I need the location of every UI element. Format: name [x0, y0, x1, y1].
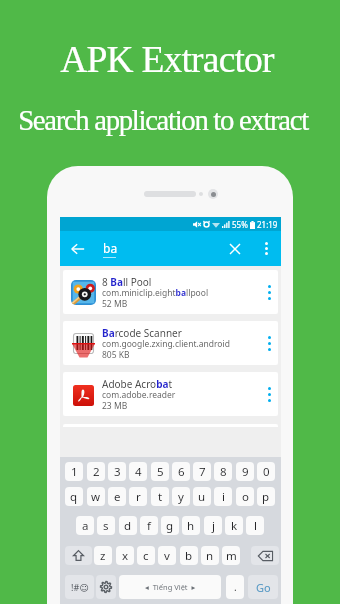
staticText: j	[212, 518, 215, 534]
staticText: g	[166, 518, 174, 534]
staticText: n	[206, 548, 214, 564]
staticText: p	[262, 489, 270, 505]
staticText: z	[100, 548, 106, 564]
button[interactable]: e	[108, 487, 126, 506]
button[interactable]: d	[119, 516, 137, 535]
button[interactable]: Shift	[65, 546, 92, 565]
button[interactable]: w	[87, 487, 105, 506]
button[interactable]: k	[225, 516, 243, 535]
button[interactable]: App options	[261, 270, 278, 314]
staticText: h	[187, 518, 195, 534]
button[interactable]: Symbols	[65, 575, 94, 599]
button[interactable]: l	[246, 516, 264, 535]
button[interactable]: a	[76, 516, 94, 535]
staticText: 805 KB	[102, 349, 130, 361]
staticText: f	[147, 518, 151, 534]
staticText: k	[231, 518, 238, 534]
button[interactable]: u	[193, 487, 211, 506]
staticText: b	[185, 548, 193, 564]
button[interactable]: .	[226, 575, 244, 599]
button[interactable]: Backspace	[251, 546, 279, 565]
button[interactable]: 9	[236, 462, 254, 481]
button[interactable]: y	[172, 487, 190, 506]
staticText: Search application to extract	[18, 104, 308, 136]
button[interactable]: 1	[65, 462, 83, 481]
button[interactable]: Clear search	[223, 231, 246, 266]
staticText: r	[136, 489, 141, 505]
staticText: .	[234, 580, 237, 594]
staticText: i	[222, 489, 225, 505]
button[interactable]: t	[151, 487, 169, 506]
button[interactable]: Keyboard settings	[96, 575, 116, 599]
button[interactable]: Go	[248, 575, 278, 599]
button[interactable]: 4	[129, 462, 147, 481]
button[interactable]: j	[204, 516, 222, 535]
staticText: 5	[157, 464, 164, 480]
button[interactable]: m	[222, 546, 240, 565]
button[interactable]: 8	[214, 462, 232, 481]
staticText: 1	[71, 464, 78, 480]
button[interactable]: x	[116, 546, 134, 565]
staticText: ba	[103, 240, 118, 256]
staticText: e	[114, 489, 121, 505]
button[interactable]: App options	[261, 321, 278, 365]
staticText: Adobe Acrobat	[102, 377, 173, 391]
staticText: l	[254, 518, 257, 534]
button[interactable]: v	[158, 546, 176, 565]
button[interactable]: 6	[172, 462, 190, 481]
button[interactable]: Back	[65, 231, 91, 266]
staticText: !#☺	[71, 581, 89, 593]
staticText: t	[158, 489, 163, 505]
button[interactable]: i	[214, 487, 232, 506]
button[interactable]: p	[257, 487, 275, 506]
staticText: 8	[220, 464, 227, 480]
button[interactable]: ◂ Tiếng Việt ▸	[119, 575, 221, 599]
staticText: x	[122, 548, 129, 564]
staticText: com.miniclip.eightballpool	[102, 287, 209, 299]
button[interactable]: c	[137, 546, 155, 565]
button[interactable]: 5	[151, 462, 169, 481]
button[interactable]: 7	[193, 462, 211, 481]
button[interactable]: 3	[108, 462, 126, 481]
staticText: s	[103, 518, 109, 534]
button[interactable]: q	[65, 487, 83, 506]
staticText: com.google.zxing.client.android	[102, 338, 230, 350]
staticText: 4	[135, 464, 142, 480]
staticText: u	[198, 489, 206, 505]
staticText: o	[242, 489, 249, 505]
staticText: 55%	[232, 219, 248, 230]
staticText: 21:19	[257, 219, 278, 230]
staticText: APK Extractor	[60, 39, 274, 81]
staticText: ◂ Tiếng Việt ▸	[145, 582, 196, 592]
staticText: 52 MB	[102, 298, 128, 310]
staticText: com.adobe.reader	[102, 389, 176, 401]
button[interactable]: s	[97, 516, 115, 535]
button[interactable]: g	[161, 516, 179, 535]
staticText: c	[143, 548, 149, 564]
button[interactable]: b	[180, 546, 198, 565]
button[interactable]: Barcode Scanner	[63, 321, 278, 365]
button[interactable]: o	[236, 487, 254, 506]
staticText: q	[70, 489, 78, 505]
button[interactable]: r	[129, 487, 147, 506]
button[interactable]: 2	[87, 462, 105, 481]
staticText: a	[82, 518, 89, 534]
staticText: Barcode Scanner	[102, 326, 182, 340]
button[interactable]: More options	[256, 231, 277, 266]
staticText: Go	[256, 580, 271, 595]
staticText: w	[91, 489, 101, 505]
staticText: 23 MB	[102, 400, 128, 412]
button[interactable]: f	[140, 516, 158, 535]
button[interactable]: 8 Ball Pool	[63, 270, 278, 314]
button[interactable]: 0	[257, 462, 275, 481]
staticText: 6	[178, 464, 185, 480]
button[interactable]: n	[201, 546, 219, 565]
button[interactable]: h	[182, 516, 200, 535]
staticText: d	[124, 518, 132, 534]
button[interactable]: App options	[261, 372, 278, 416]
staticText: y	[178, 489, 184, 505]
staticText: 2	[93, 464, 100, 480]
staticText: v	[164, 548, 170, 564]
button[interactable]: Adobe Acrobat	[63, 372, 278, 416]
button[interactable]: z	[94, 546, 112, 565]
